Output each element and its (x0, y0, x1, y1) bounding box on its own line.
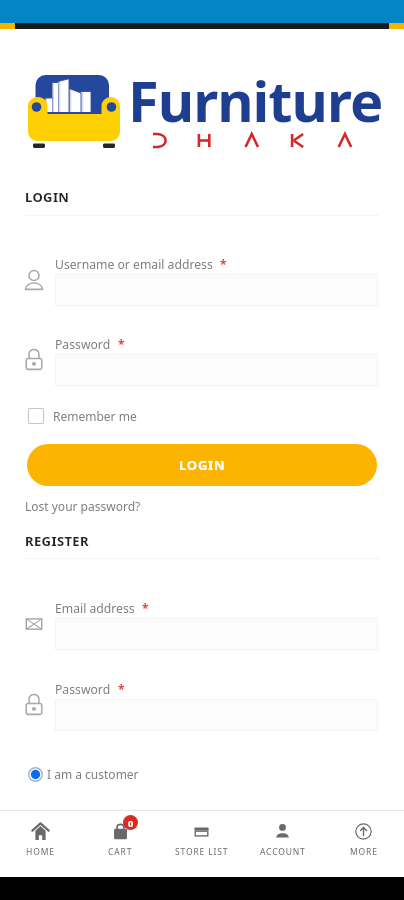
staticText: Lost your password? (25, 498, 141, 514)
button[interactable]: Lost your password? (25, 498, 141, 514)
staticText: Password (55, 681, 111, 698)
staticText: HOME (26, 846, 55, 858)
staticText: 0 (128, 817, 134, 829)
staticText: CART (108, 846, 133, 858)
staticText: * (220, 256, 227, 272)
staticText: * (142, 600, 149, 616)
button[interactable]: Remember me (28, 408, 137, 424)
button[interactable]: LOGIN (27, 444, 377, 486)
staticText: REGISTER (25, 532, 89, 550)
staticText: I am a customer (47, 766, 139, 782)
button[interactable]: HOME (0, 811, 80, 877)
button[interactable]: MORE (323, 811, 404, 877)
staticText: * (118, 681, 125, 697)
button[interactable]: STORE LIST (161, 811, 242, 877)
staticText: STORE LIST (175, 846, 229, 858)
staticText: Email address (55, 600, 135, 617)
staticText: LOGIN (25, 188, 70, 206)
staticText: ACCOUNT (260, 846, 306, 858)
button[interactable]: ACCOUNT (242, 811, 323, 877)
button[interactable]: I am a customer (28, 766, 139, 782)
button[interactable]: 0 (80, 811, 161, 877)
staticText: Username or email address (55, 256, 213, 273)
staticText: Remember me (53, 408, 137, 424)
staticText: MORE (350, 846, 378, 858)
staticText: Password (55, 336, 111, 353)
staticText: LOGIN (179, 456, 226, 474)
staticText: * (118, 336, 125, 352)
staticText: Furniture (128, 62, 383, 138)
